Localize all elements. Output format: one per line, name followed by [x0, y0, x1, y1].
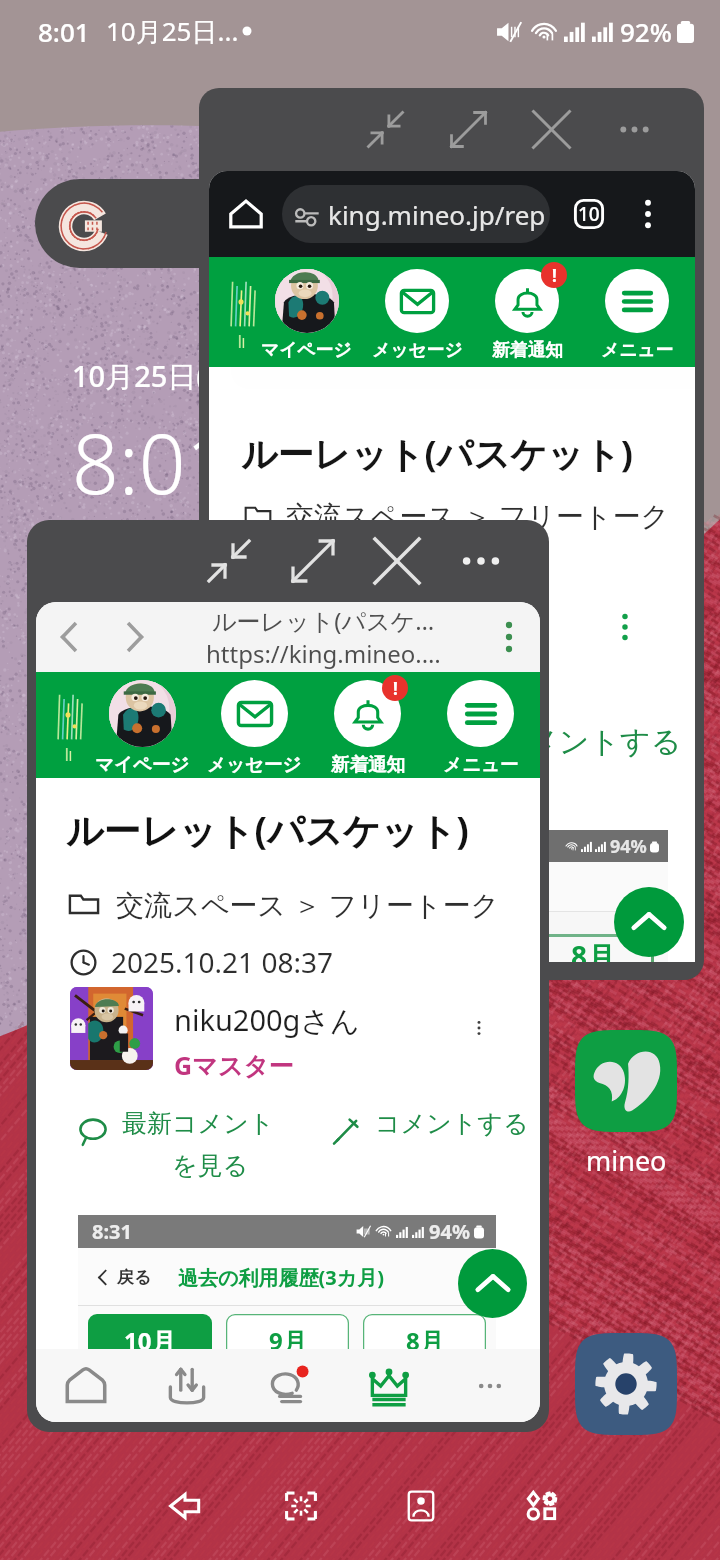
- button[interactable]: メニュー: [582, 257, 692, 367]
- staticText: 10月: [124, 1324, 176, 1357]
- staticText: 94%: [610, 834, 647, 859]
- staticText: マイページ: [261, 339, 352, 361]
- button[interactable]: Home: [36, 1349, 136, 1422]
- staticText: 過去の利用履歴(3カ月): [178, 1264, 384, 1291]
- staticText: 交流スペース ＞ フリートーク: [116, 885, 500, 923]
- staticText: 10月25日(土): [72, 356, 244, 396]
- button[interactable]: Settings: [575, 1333, 677, 1435]
- button[interactable]: Minimize: [187, 520, 271, 602]
- staticText: niku200gさん: [174, 1000, 360, 1040]
- staticText: mineo: [586, 1142, 667, 1179]
- staticText: ルーレット(パスケット): [66, 804, 469, 855]
- button[interactable]: Back: [151, 1472, 219, 1540]
- button[interactable]: More options: [626, 192, 670, 236]
- staticText: 94%: [429, 1218, 470, 1245]
- staticText: ルーレット(パスケット): [241, 429, 634, 478]
- staticText: !: [393, 677, 398, 700]
- button[interactable]: Maximize: [427, 88, 510, 171]
- staticText: 新着通知: [331, 753, 405, 776]
- staticText: メッセージ: [207, 753, 302, 776]
- button[interactable]: Scroll to top: [614, 887, 684, 957]
- button[interactable]: More: [439, 1349, 540, 1422]
- button[interactable]: Tabs: [566, 191, 612, 237]
- button[interactable]: Recents: [267, 1472, 335, 1540]
- button[interactable]: Scroll to top: [458, 1249, 527, 1318]
- staticText: 8月: [406, 1324, 444, 1357]
- button[interactable]: Forward: [102, 604, 168, 670]
- staticText: メッセージ: [372, 339, 463, 361]
- button[interactable]: Close: [355, 520, 439, 602]
- button[interactable]: メニュー: [424, 672, 537, 778]
- button[interactable]: !: [472, 257, 582, 367]
- button[interactable]: Close: [510, 88, 593, 171]
- button[interactable]: Transfer: [136, 1349, 237, 1422]
- button[interactable]: Minimize: [344, 88, 427, 171]
- button[interactable]: king.mineo.jp/rep: [282, 185, 550, 243]
- staticText: 8:01: [72, 406, 233, 518]
- staticText: 10月25日...: [106, 13, 239, 49]
- staticText: !: [552, 264, 557, 287]
- button[interactable]: Google search: [35, 179, 415, 268]
- staticText: 92%: [620, 14, 672, 49]
- button[interactable]: Rank: [338, 1349, 439, 1422]
- button[interactable]: More options: [439, 520, 523, 602]
- button[interactable]: !: [311, 672, 424, 778]
- staticText: king.mineo.jp/rep: [328, 197, 546, 232]
- staticText: 8:31: [92, 1218, 132, 1245]
- staticText: ルーレット(パスケ…: [212, 604, 435, 637]
- button[interactable]: メッセージ: [198, 672, 311, 778]
- button[interactable]: Home: [218, 186, 274, 242]
- button[interactable]: Maximize: [271, 520, 355, 602]
- staticText: 10: [578, 201, 600, 227]
- button[interactable]: マイページ: [251, 257, 362, 367]
- staticText: 最新コメント を見る: [122, 1108, 275, 1182]
- button[interactable]: コメントする: [331, 1108, 529, 1146]
- staticText: マイページ: [95, 753, 190, 776]
- staticText: メントする: [528, 723, 682, 761]
- staticText: 新着通知: [492, 339, 563, 361]
- button[interactable]: More options: [593, 88, 676, 171]
- button[interactable]: Chat: [237, 1349, 338, 1422]
- button[interactable]: mineo: [575, 1030, 677, 1179]
- button[interactable]: More options: [478, 606, 540, 668]
- staticText: 8月: [571, 937, 616, 962]
- staticText: メニュー: [601, 339, 674, 361]
- staticText: Gマスター: [174, 1048, 294, 1082]
- staticText: 9月: [269, 1324, 307, 1357]
- button[interactable]: Apps: [508, 1472, 576, 1540]
- button[interactable]: Profile: [387, 1472, 455, 1540]
- button[interactable]: 最新コメント を見る: [78, 1108, 275, 1182]
- button[interactable]: メッセージ: [362, 257, 472, 367]
- staticText: メニュー: [443, 753, 519, 776]
- staticText: 8:01: [38, 14, 90, 49]
- button[interactable]: Back: [36, 604, 102, 670]
- staticText: コメントする: [375, 1108, 529, 1139]
- staticText: 交流スペース ＞ フリートーク: [286, 496, 670, 534]
- staticText: 2025.10.21 08:37: [111, 943, 333, 981]
- staticText: https://king.mineo.…: [206, 637, 441, 670]
- staticText: 戻る: [117, 1267, 152, 1288]
- button[interactable]: More: [451, 1000, 507, 1056]
- button[interactable]: マイページ: [86, 672, 198, 778]
